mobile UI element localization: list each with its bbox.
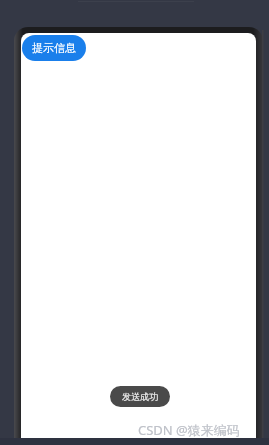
button[interactable]: 提示信息 bbox=[22, 35, 86, 61]
staticText: 发送成功 bbox=[122, 391, 158, 402]
staticText: CSDN @猿来编码 bbox=[138, 421, 240, 439]
staticText: 提示信息 bbox=[32, 41, 76, 55]
